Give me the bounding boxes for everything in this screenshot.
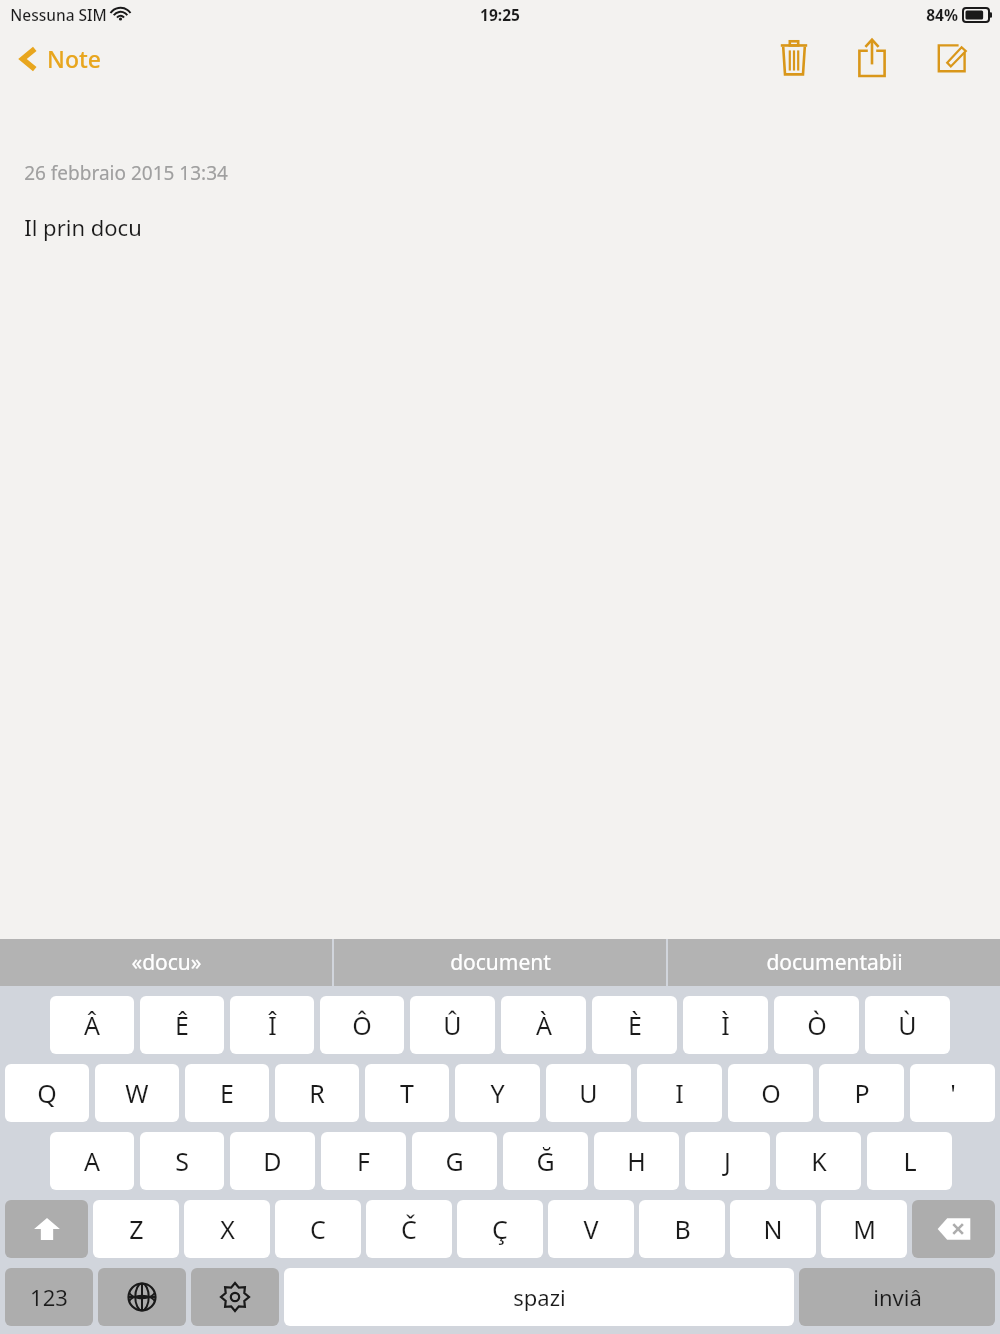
button[interactable]: Cancella — [912, 1200, 995, 1258]
button[interactable]: Î — [230, 996, 314, 1054]
button[interactable]: E — [185, 1064, 269, 1122]
staticText: 19:25 — [480, 4, 520, 25]
button[interactable]: Ê — [140, 996, 224, 1054]
button[interactable]: C — [275, 1200, 361, 1258]
staticText: S — [175, 1144, 189, 1178]
button[interactable]: K — [776, 1132, 861, 1190]
staticText: F — [357, 1144, 370, 1178]
staticText: X — [220, 1212, 235, 1246]
button[interactable]: A — [50, 1132, 134, 1190]
button[interactable]: L — [867, 1132, 952, 1190]
button[interactable]: P — [819, 1064, 904, 1122]
staticText: N — [763, 1212, 783, 1246]
staticText: U — [579, 1076, 598, 1110]
staticText: Note — [47, 43, 101, 74]
button[interactable]: B — [639, 1200, 725, 1258]
button[interactable]: Note — [14, 37, 107, 80]
staticText: L — [903, 1144, 917, 1178]
button[interactable]: Z — [93, 1200, 179, 1258]
button[interactable]: N — [730, 1200, 816, 1258]
staticText: Ò — [807, 1008, 827, 1042]
button[interactable]: Y — [455, 1064, 540, 1122]
button[interactable]: W — [95, 1064, 179, 1122]
staticText: Ô — [352, 1008, 372, 1042]
button[interactable]: I — [637, 1064, 722, 1122]
button[interactable]: inviâ — [799, 1268, 995, 1326]
button[interactable]: Ù — [865, 996, 950, 1054]
button[interactable]: H — [594, 1132, 679, 1190]
button[interactable]: «docu» — [0, 939, 332, 986]
staticText: 26 febbraio 2015 13:34 — [24, 160, 228, 186]
button[interactable]: G — [412, 1132, 497, 1190]
staticText: «docu» — [131, 948, 202, 977]
button[interactable]: ' — [910, 1064, 995, 1122]
button[interactable]: M — [821, 1200, 907, 1258]
button[interactable]: Ò — [774, 996, 859, 1054]
staticText: M — [853, 1212, 876, 1246]
staticText: Â — [84, 1008, 100, 1042]
staticText: G — [445, 1144, 464, 1178]
staticText: Y — [490, 1076, 505, 1110]
button[interactable]: È — [592, 996, 677, 1054]
button[interactable]: spazi — [284, 1268, 794, 1326]
staticText: B — [674, 1212, 691, 1246]
staticText: V — [583, 1212, 599, 1246]
staticText: D — [263, 1144, 282, 1178]
button[interactable]: X — [184, 1200, 270, 1258]
staticText: Il prin docu — [24, 212, 142, 242]
staticText: Û — [443, 1008, 462, 1042]
staticText: 123 — [30, 1282, 68, 1312]
button[interactable]: U — [546, 1064, 631, 1122]
staticText: Ç — [492, 1212, 508, 1246]
button[interactable]: R — [275, 1064, 359, 1122]
button[interactable]: 123 — [5, 1268, 93, 1326]
staticText: Nessuna SIM — [10, 4, 107, 25]
button[interactable]: Maiuscole — [5, 1200, 88, 1258]
button[interactable]: F — [321, 1132, 406, 1190]
staticText: A — [84, 1144, 100, 1178]
button[interactable]: Condividi — [844, 33, 900, 83]
button[interactable]: document — [334, 939, 666, 986]
button[interactable]: Ì — [683, 996, 768, 1054]
staticText: C — [310, 1212, 326, 1246]
button[interactable]: documentabii — [668, 939, 1000, 986]
staticText: document — [450, 948, 551, 977]
staticText: inviâ — [873, 1282, 922, 1312]
staticText: O — [761, 1076, 781, 1110]
button[interactable]: Elimina — [766, 33, 822, 83]
staticText: Č — [401, 1212, 417, 1246]
button[interactable]: O — [728, 1064, 813, 1122]
button[interactable]: À — [501, 996, 586, 1054]
staticText: T — [400, 1076, 414, 1110]
staticText: documentabii — [766, 948, 903, 977]
button[interactable]: Â — [50, 996, 134, 1054]
staticText: I — [675, 1076, 684, 1110]
staticText: Î — [268, 1008, 277, 1042]
button[interactable]: Ô — [320, 996, 404, 1054]
staticText: Q — [37, 1076, 57, 1110]
staticText: Z — [129, 1212, 144, 1246]
button[interactable]: Ç — [457, 1200, 543, 1258]
button[interactable]: Impostazioni — [191, 1268, 279, 1326]
staticText: È — [628, 1008, 642, 1042]
button[interactable]: Q — [5, 1064, 89, 1122]
button[interactable]: Û — [410, 996, 495, 1054]
staticText: Ì — [721, 1008, 730, 1042]
staticText: R — [309, 1076, 325, 1110]
button[interactable]: J — [685, 1132, 770, 1190]
button[interactable]: Ğ — [503, 1132, 588, 1190]
button[interactable]: Č — [366, 1200, 452, 1258]
staticText: P — [854, 1076, 870, 1110]
button[interactable]: Cambia tastiera — [98, 1268, 186, 1326]
button[interactable]: S — [140, 1132, 224, 1190]
button[interactable]: Nuova nota — [924, 33, 980, 83]
button[interactable]: V — [548, 1200, 634, 1258]
staticText: W — [125, 1076, 149, 1110]
staticText: Ğ — [536, 1144, 555, 1178]
staticText: ' — [950, 1076, 956, 1110]
button[interactable]: T — [365, 1064, 449, 1122]
staticText: Ê — [175, 1008, 189, 1042]
button[interactable]: D — [230, 1132, 315, 1190]
staticText: K — [811, 1144, 827, 1178]
staticText: 84% — [926, 4, 958, 25]
